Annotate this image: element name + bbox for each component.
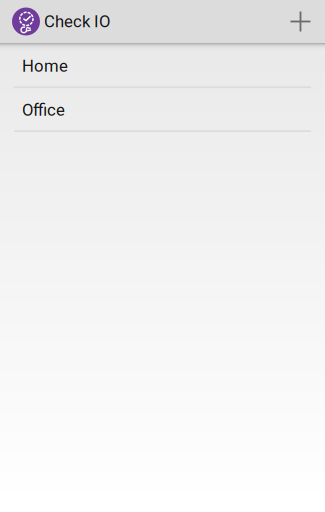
staticText: Office [22,100,65,120]
staticText: Check IO [44,12,110,31]
button[interactable]: Home [0,44,325,88]
button[interactable]: Check IO [12,7,110,35]
staticText: Home [22,56,68,76]
button[interactable]: Add [286,7,315,36]
button[interactable]: Office [0,88,325,132]
